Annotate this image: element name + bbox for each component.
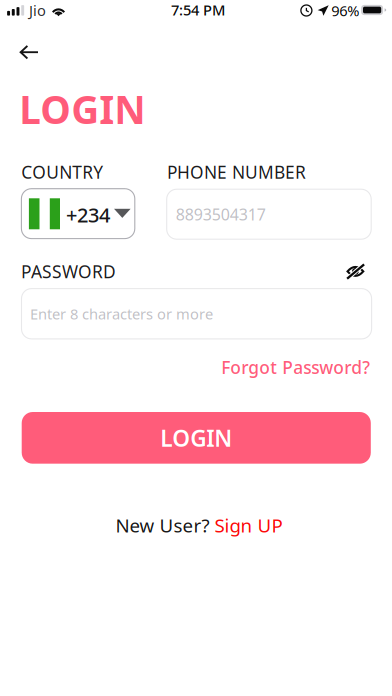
button[interactable]: Forgot Password? bbox=[217, 352, 374, 383]
staticText: Sign UP bbox=[215, 513, 283, 538]
staticText: PHONE NUMBER bbox=[167, 160, 306, 183]
staticText: Enter 8 characters or more bbox=[30, 304, 213, 323]
staticText: Jio bbox=[29, 1, 46, 20]
button[interactable]: Sign UP bbox=[215, 513, 283, 538]
staticText: 7:54 PM bbox=[171, 0, 225, 20]
staticText: 96% bbox=[331, 1, 359, 20]
staticText: LOGIN bbox=[160, 423, 232, 453]
button[interactable]: Show password bbox=[338, 258, 372, 285]
button[interactable]: Back bbox=[0, 35, 57, 69]
button[interactable]: Enter 8 characters or more bbox=[21, 289, 372, 339]
staticText: New User? bbox=[116, 513, 215, 538]
staticText: +234 bbox=[66, 201, 110, 228]
button[interactable]: LOGIN bbox=[22, 412, 371, 464]
staticText: PASSWORD bbox=[21, 260, 116, 283]
staticText: LOGIN bbox=[19, 83, 145, 135]
staticText: Forgot Password? bbox=[221, 356, 370, 379]
button[interactable]: 8893504317 bbox=[167, 189, 371, 239]
staticText: 8893504317 bbox=[176, 204, 266, 225]
button[interactable]: +234 bbox=[21, 189, 135, 239]
staticText: COUNTRY bbox=[21, 160, 103, 183]
